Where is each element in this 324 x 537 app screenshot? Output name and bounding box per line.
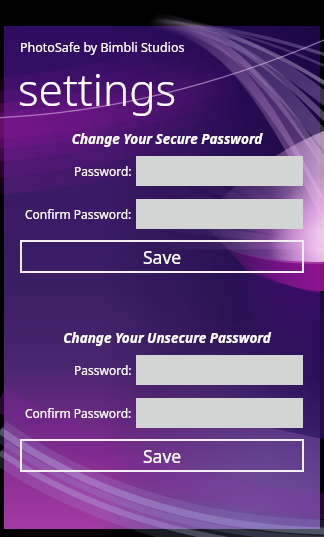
staticText: Confirm Password: (25, 405, 132, 421)
staticText: Change Your Secure Password (30, 130, 304, 148)
staticText: Save (143, 444, 182, 468)
staticText: Change Your Unsecure Password (30, 329, 304, 347)
staticText: settings (18, 59, 177, 119)
button[interactable]: Save (20, 439, 304, 472)
staticText: Password: (74, 362, 132, 378)
staticText: PhotoSafe by Bimbli Studios (20, 39, 185, 56)
staticText: Confirm Password: (25, 206, 132, 222)
staticText: Save (143, 245, 182, 269)
staticText: Password: (74, 163, 132, 179)
button[interactable]: Save (20, 240, 304, 273)
